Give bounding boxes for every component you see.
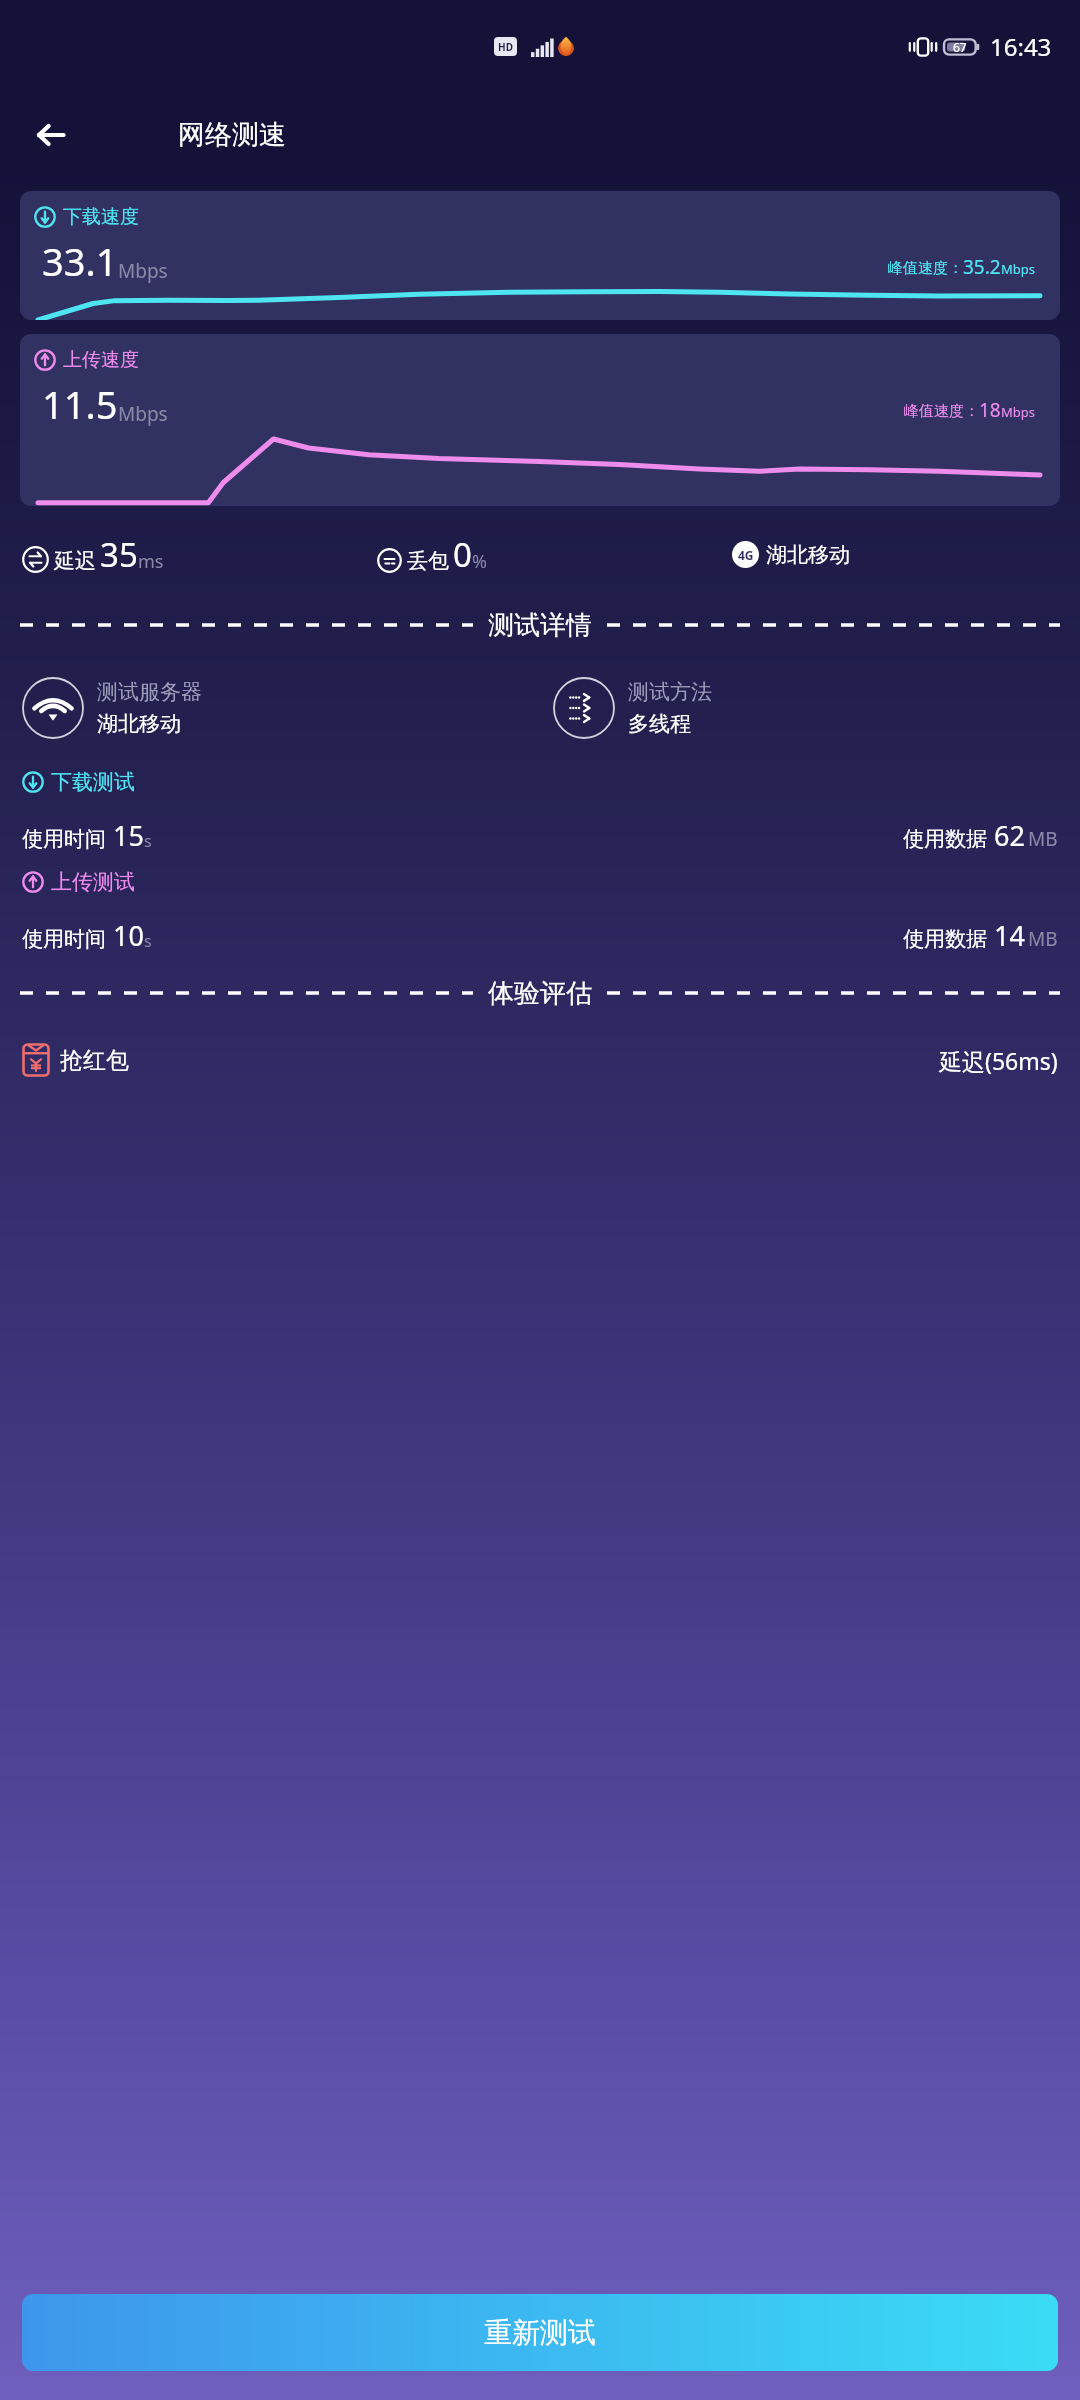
staticText: 18 bbox=[979, 397, 1001, 423]
staticText: HD bbox=[498, 40, 513, 54]
staticText: 35 bbox=[100, 532, 138, 577]
staticText: 33.1 bbox=[42, 235, 118, 287]
staticText: 11.5 bbox=[42, 378, 118, 430]
staticText: Mbps bbox=[118, 258, 168, 284]
staticText: 下载速度 bbox=[63, 205, 139, 229]
staticText: 下载测试 bbox=[51, 769, 135, 795]
staticText: 上传测试 bbox=[51, 869, 135, 895]
button[interactable]: 上传速度 bbox=[20, 334, 1060, 506]
button[interactable]: 测试服务器 bbox=[22, 677, 553, 739]
button[interactable]: 4G bbox=[732, 541, 1058, 568]
staticText: 测试方法 bbox=[628, 679, 712, 705]
staticText: 使用数据 bbox=[903, 926, 987, 952]
staticText: 35.2 bbox=[963, 254, 1001, 280]
button[interactable]: 测试方法 bbox=[553, 677, 1058, 739]
staticText: 14 bbox=[994, 917, 1025, 954]
staticText: 延迟 bbox=[54, 548, 96, 574]
staticText: 延迟(56ms) bbox=[939, 1045, 1058, 1076]
staticText: 抢红包 bbox=[60, 1046, 129, 1075]
staticText: 62 bbox=[994, 817, 1025, 854]
staticText: 使用时间 bbox=[22, 826, 106, 852]
staticText: 峰值速度： bbox=[888, 259, 963, 278]
button[interactable]: 抢红包 bbox=[22, 1030, 1058, 1090]
button[interactable]: 下载速度 bbox=[20, 191, 1060, 320]
staticText: 上传速度 bbox=[63, 348, 139, 372]
staticText: Mbps bbox=[1001, 260, 1036, 278]
staticText: MB bbox=[1028, 826, 1058, 852]
staticText: 16:43 bbox=[990, 30, 1052, 63]
staticText: MB bbox=[1028, 926, 1058, 952]
staticText: 重新测试 bbox=[484, 2315, 596, 2350]
button[interactable]: 丢包 bbox=[377, 532, 732, 577]
staticText: 湖北移动 bbox=[97, 711, 181, 737]
button[interactable]: 重新测试 bbox=[22, 2294, 1058, 2371]
staticText: 0 bbox=[453, 532, 472, 577]
staticText: 15 bbox=[113, 817, 144, 854]
staticText: 测试服务器 bbox=[97, 679, 202, 705]
staticText: ms bbox=[138, 549, 164, 574]
staticText: % bbox=[472, 549, 487, 574]
staticText: 测试详情 bbox=[488, 609, 592, 642]
staticText: 丢包 bbox=[407, 548, 449, 574]
staticText: 4G bbox=[738, 547, 754, 563]
button[interactable]: Back bbox=[22, 106, 80, 164]
staticText: 湖北移动 bbox=[766, 542, 850, 568]
staticText: Mbps bbox=[1001, 403, 1036, 421]
staticText: 10 bbox=[113, 917, 144, 954]
staticText: 体验评估 bbox=[488, 977, 592, 1010]
staticText: 使用数据 bbox=[903, 826, 987, 852]
staticText: 网络测速 bbox=[178, 118, 286, 152]
staticText: 使用时间 bbox=[22, 926, 106, 952]
staticText: 67 bbox=[953, 39, 967, 55]
button[interactable]: 延迟 bbox=[22, 532, 377, 577]
staticText: s bbox=[144, 830, 152, 852]
staticText: Mbps bbox=[118, 401, 168, 427]
staticText: 峰值速度： bbox=[904, 402, 979, 421]
staticText: 多线程 bbox=[628, 711, 691, 737]
staticText: s bbox=[144, 930, 152, 952]
